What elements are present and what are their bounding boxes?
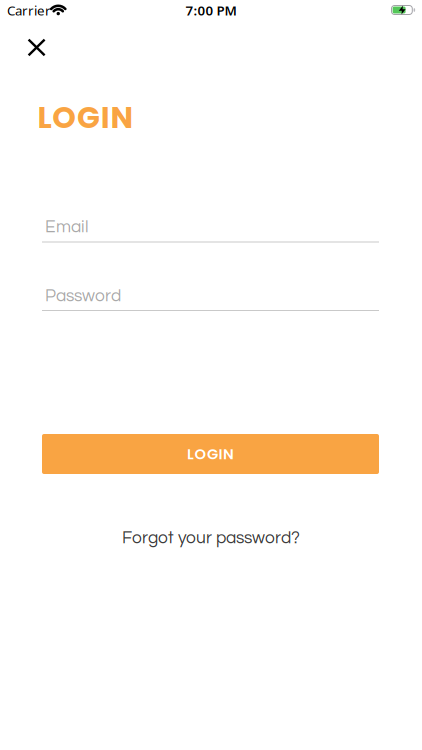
staticText: Email (45, 218, 89, 236)
button[interactable]: Close (23, 34, 51, 61)
staticText: 7:00 PM (185, 1, 236, 19)
staticText: Password (45, 287, 121, 305)
staticText: Carrier (7, 1, 51, 19)
staticText: Forgot your password? (122, 529, 300, 547)
button[interactable]: LOGIN (42, 434, 379, 474)
staticText: LOGIN (37, 96, 134, 138)
button[interactable]: Forgot your password? (122, 529, 300, 547)
staticText: LOGIN (187, 444, 234, 464)
